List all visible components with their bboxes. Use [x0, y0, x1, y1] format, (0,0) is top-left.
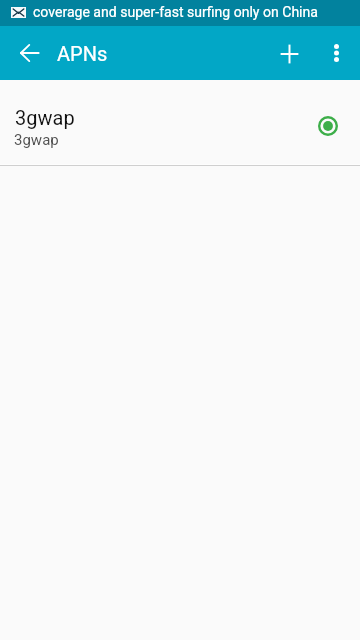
button[interactable]: Back: [4, 28, 54, 78]
button[interactable]: 3gwap: [0, 80, 360, 164]
staticText: APNs: [57, 42, 108, 65]
button[interactable]: Add APN: [265, 30, 313, 78]
other: 3gwap selected: [318, 116, 338, 136]
staticText: 3gwap: [14, 131, 59, 149]
button[interactable]: More options: [312, 29, 360, 77]
staticText: 3gwap: [15, 106, 75, 129]
staticText: coverage and super-fast surfing only on …: [33, 4, 318, 20]
